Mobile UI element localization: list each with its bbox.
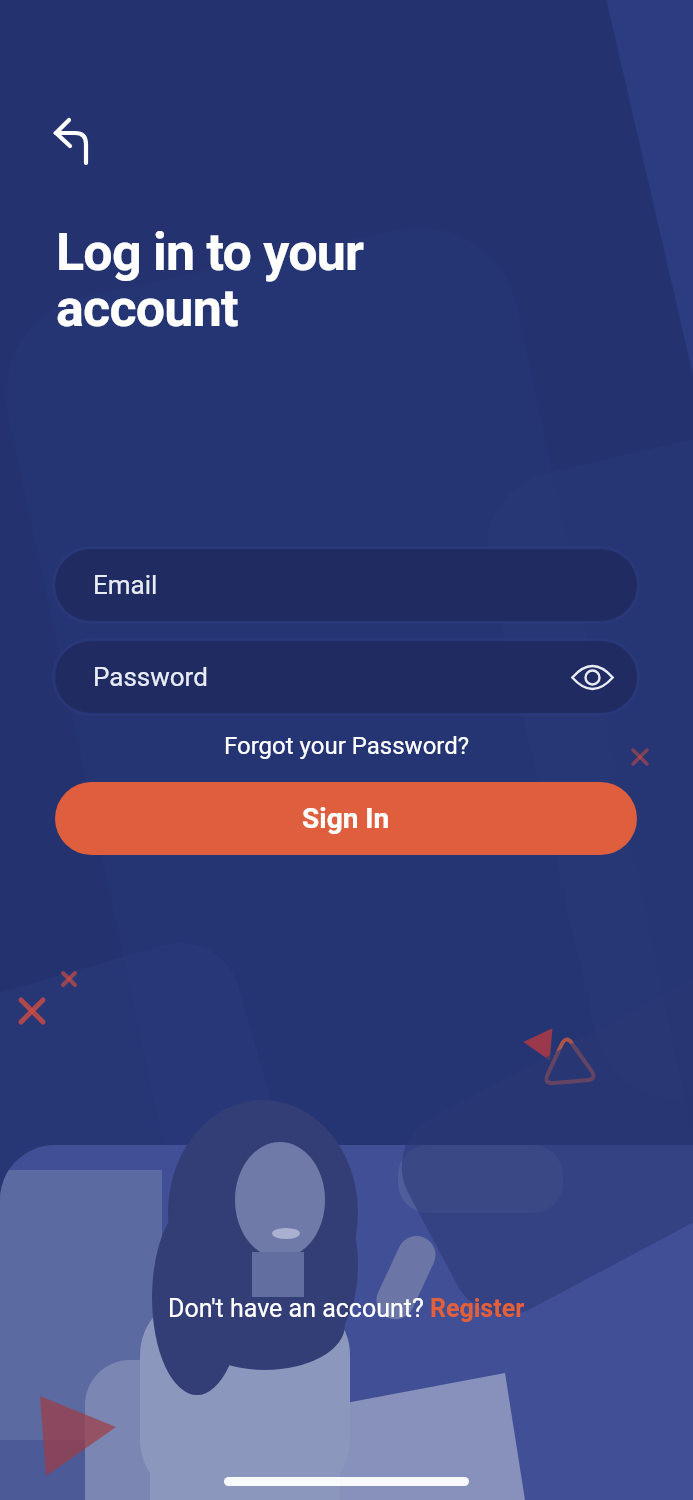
button[interactable]: Sign In bbox=[55, 782, 637, 855]
staticText: Email bbox=[93, 570, 158, 600]
button[interactable] bbox=[40, 105, 104, 169]
button[interactable]: Don't have an account? Register bbox=[168, 1294, 525, 1323]
staticText: Sign In bbox=[302, 802, 390, 835]
staticText: Password bbox=[93, 662, 208, 692]
button[interactable]: Email bbox=[55, 549, 637, 621]
staticText: Log in to your account bbox=[56, 222, 364, 338]
button[interactable]: Password bbox=[55, 641, 637, 713]
button[interactable]: Forgot your Password? bbox=[224, 732, 470, 760]
